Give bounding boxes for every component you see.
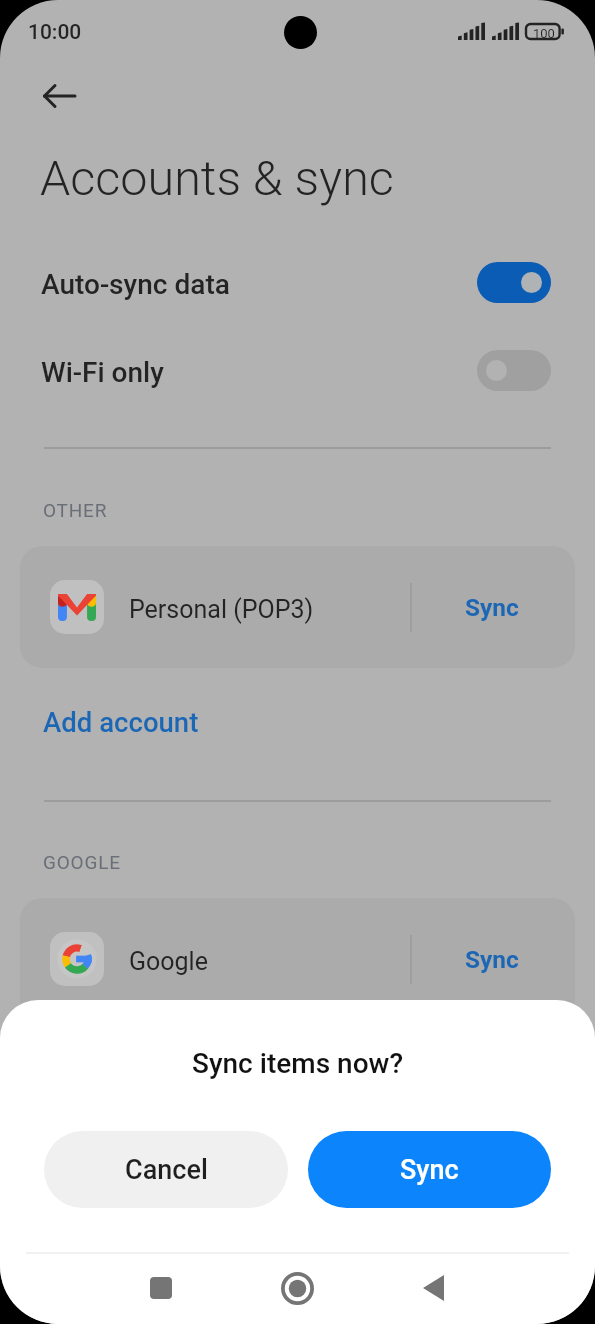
button[interactable]: Sync — [308, 1131, 551, 1208]
button[interactable]: Google — [20, 898, 410, 1020]
staticText: Sync — [465, 593, 519, 622]
staticText: Personal (POP3) — [129, 595, 314, 624]
button[interactable]: Auto-sync data — [0, 255, 595, 311]
staticText: Sync — [400, 1154, 459, 1186]
button[interactable]: Back — [35, 72, 83, 120]
staticText: OTHER — [43, 499, 108, 521]
staticText: GOOGLE — [43, 851, 121, 873]
button[interactable]: Add account — [43, 706, 199, 738]
staticText: Sync items now? — [0, 1047, 595, 1080]
staticText: Wi-Fi only — [41, 356, 164, 389]
staticText: Accounts & sync — [40, 150, 394, 207]
button[interactable]: Cancel — [44, 1131, 288, 1208]
button[interactable]: Wi-Fi only — [0, 343, 595, 399]
button[interactable]: Sync — [410, 898, 573, 1020]
staticText: Sync — [465, 945, 519, 974]
button[interactable]: Recents — [125, 1252, 197, 1324]
staticText: Auto-sync data — [41, 268, 230, 301]
button[interactable]: Sync — [410, 546, 573, 668]
staticText: Google — [129, 947, 208, 976]
staticText: 100 — [533, 26, 555, 41]
button[interactable]: Home — [261, 1252, 333, 1324]
staticText: 10:00 — [28, 20, 82, 45]
staticText: Cancel — [125, 1154, 208, 1186]
button[interactable]: Back — [397, 1252, 469, 1324]
button[interactable]: Personal (POP3) — [20, 546, 410, 668]
